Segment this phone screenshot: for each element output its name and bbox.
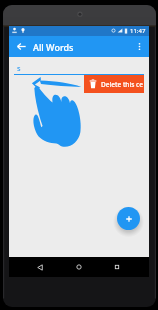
- button[interactable]: Navigate up: [9, 36, 33, 57]
- button[interactable]: Home: [73, 257, 85, 277]
- button[interactable]: Add word: [117, 207, 140, 230]
- button[interactable]: Back: [34, 257, 46, 277]
- staticText: 11:47: [130, 27, 146, 35]
- staticText: s: [17, 63, 21, 73]
- staticText: Delete this ce: [101, 80, 143, 89]
- button[interactable]: Recent apps: [111, 257, 123, 277]
- staticText: All Words: [33, 41, 74, 53]
- button[interactable]: More options: [129, 36, 149, 57]
- button[interactable]: Delete this ce: [84, 75, 144, 93]
